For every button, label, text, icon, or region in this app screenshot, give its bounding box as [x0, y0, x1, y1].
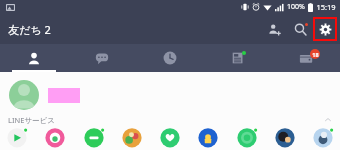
staticText: LINEサービス [8, 115, 55, 125]
button[interactable]: Tab [272, 44, 340, 72]
button[interactable]: line [81, 127, 107, 150]
button[interactable]: weather [310, 127, 336, 150]
button[interactable]: LINEサービス [0, 113, 340, 127]
staticText: 18 [312, 51, 319, 58]
button[interactable]: play [4, 127, 30, 150]
button[interactable]: 友だち 2 [8, 22, 51, 37]
button[interactable]: manga [272, 127, 298, 150]
button[interactable]: game [119, 127, 145, 150]
button[interactable]: Tab [136, 44, 204, 72]
button[interactable]: Tab [0, 44, 68, 72]
button[interactable]: Settings [315, 19, 335, 39]
staticText: 15:19 [316, 2, 336, 12]
button[interactable]: Search [287, 16, 313, 42]
button[interactable]: shop [42, 127, 68, 150]
staticText: 100% [287, 2, 305, 12]
button[interactable]: Tab [204, 44, 272, 72]
button[interactable] [0, 77, 340, 113]
button[interactable]: Add friend [261, 16, 287, 42]
button[interactable]: Tab [68, 44, 136, 72]
button[interactable]: health [157, 127, 183, 150]
staticText: 友だち 2 [8, 22, 51, 37]
button[interactable]: bank [195, 127, 221, 150]
button[interactable]: pay [234, 127, 260, 150]
